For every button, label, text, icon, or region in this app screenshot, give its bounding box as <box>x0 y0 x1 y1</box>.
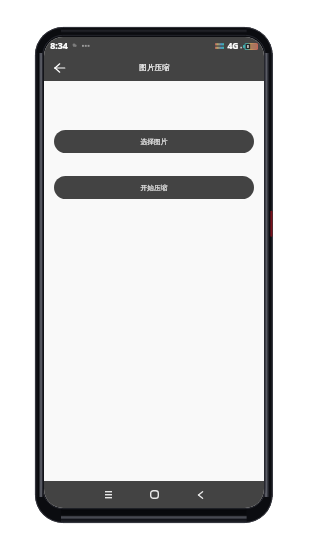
staticText: 8:34 <box>50 40 68 52</box>
staticText: 4G <box>227 40 239 52</box>
button[interactable]: Back <box>49 58 69 78</box>
staticText: 开始压缩 <box>140 183 168 192</box>
staticText: 图片压缩 <box>139 63 170 73</box>
button[interactable]: Home <box>137 481 171 508</box>
button[interactable]: Back <box>183 481 217 508</box>
staticText: 选择图片 <box>140 137 168 146</box>
button[interactable]: 开始压缩 <box>54 176 254 199</box>
button[interactable]: Recent apps <box>91 481 125 508</box>
button[interactable]: 选择图片 <box>54 130 254 153</box>
